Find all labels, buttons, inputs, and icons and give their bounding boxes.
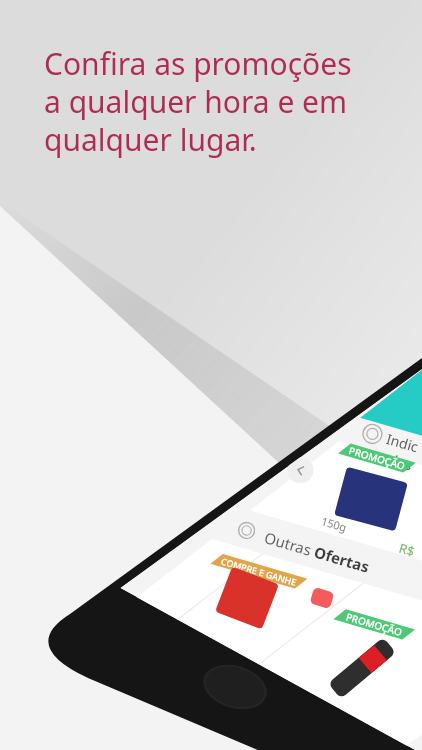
staticText: Confira as promoções a qualquer hora e e… (44, 43, 352, 160)
